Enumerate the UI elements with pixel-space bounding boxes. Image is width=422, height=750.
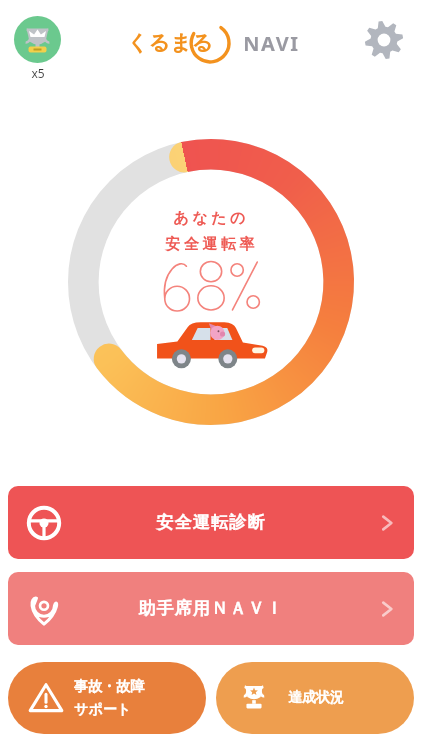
button[interactable]: 事故・故障: [8, 662, 206, 734]
staticText: 安全運転診断: [156, 512, 266, 533]
staticText: NAVI: [243, 30, 300, 57]
button[interactable]: 安全運転診断: [8, 486, 414, 559]
button[interactable]: 助手席用ＮＡＶＩ: [8, 572, 414, 645]
button[interactable]: Badges, 5 earned: [12, 14, 63, 83]
staticText: 事故・故障: [74, 678, 144, 696]
staticText: 達成状況: [288, 689, 344, 707]
staticText: サポート: [74, 701, 131, 719]
staticText: x5: [31, 65, 45, 81]
staticText: 安全運転率: [165, 235, 258, 254]
staticText: あなたの: [173, 209, 249, 228]
button[interactable]: 達成状況: [216, 662, 414, 734]
staticText: 助手席用ＮＡＶＩ: [138, 598, 284, 619]
staticText: くるまる: [127, 30, 213, 56]
button[interactable]: Settings: [360, 16, 408, 64]
